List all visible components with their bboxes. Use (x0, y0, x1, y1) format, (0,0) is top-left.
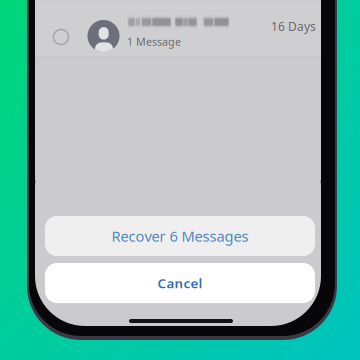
button[interactable]: 1 Message (35, 0, 321, 57)
button[interactable]: Recover 6 Messages (45, 216, 315, 256)
staticText: 1 Message (127, 34, 181, 49)
staticText: Recover 6 Messages (111, 226, 248, 246)
button[interactable]: Cancel (45, 263, 315, 303)
staticText: Cancel (157, 274, 202, 292)
staticText: 16 Days (271, 18, 316, 34)
